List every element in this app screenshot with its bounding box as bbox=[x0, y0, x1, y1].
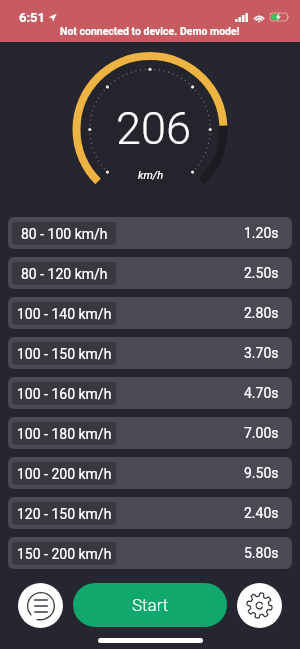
staticText: Start bbox=[132, 595, 169, 615]
staticText: 4.70s bbox=[244, 385, 279, 401]
button[interactable]: 100 - 180 km/h bbox=[8, 417, 292, 449]
staticText: 206 bbox=[116, 102, 191, 155]
button[interactable]: Start bbox=[73, 583, 227, 627]
button[interactable]: Messages bbox=[18, 583, 63, 628]
staticText: 3.70s bbox=[244, 345, 279, 361]
button[interactable]: 100 - 200 km/h bbox=[8, 457, 292, 489]
staticText: 9.50s bbox=[244, 465, 279, 481]
staticText: 100 - 150 km/h bbox=[17, 346, 112, 362]
staticText: 100 - 160 km/h bbox=[17, 386, 112, 402]
staticText: 100 - 180 km/h bbox=[17, 426, 112, 442]
staticText: km/h bbox=[138, 169, 164, 182]
staticText: 2.50s bbox=[244, 265, 279, 281]
staticText: 100 - 140 km/h bbox=[17, 306, 112, 322]
staticText: Not connected to device. Demo mode! bbox=[60, 25, 240, 37]
button[interactable]: 80 - 120 km/h bbox=[8, 257, 292, 289]
staticText: 7.00s bbox=[244, 425, 279, 441]
staticText: 5.80s bbox=[244, 545, 279, 561]
staticText: 1.20s bbox=[244, 225, 279, 241]
button[interactable]: 120 - 150 km/h bbox=[8, 497, 292, 529]
button[interactable]: Settings bbox=[237, 583, 282, 628]
button[interactable]: 100 - 160 km/h bbox=[8, 377, 292, 409]
staticText: 120 - 150 km/h bbox=[17, 506, 112, 522]
button[interactable]: 150 - 200 km/h bbox=[8, 537, 292, 569]
staticText: 100 - 200 km/h bbox=[17, 466, 112, 482]
staticText: 2.80s bbox=[244, 305, 279, 321]
staticText: 150 - 200 km/h bbox=[17, 546, 112, 562]
button[interactable]: 100 - 140 km/h bbox=[8, 297, 292, 329]
button[interactable]: 100 - 150 km/h bbox=[8, 337, 292, 369]
staticText: 2.40s bbox=[244, 505, 279, 521]
button[interactable]: 80 - 100 km/h bbox=[8, 217, 292, 249]
staticText: 80 - 100 km/h bbox=[21, 226, 108, 242]
staticText: 6:51 bbox=[19, 10, 46, 25]
staticText: 80 - 120 km/h bbox=[21, 266, 108, 282]
